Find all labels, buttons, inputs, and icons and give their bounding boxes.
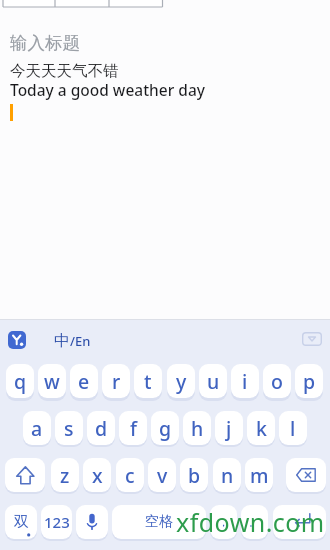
staticText: 今天天天气不错 Today a good weather day [10,61,205,101]
button[interactable]: m [245,458,273,492]
button[interactable]: i [231,364,259,398]
button[interactable] [5,458,45,492]
button[interactable]: q [6,364,34,398]
button[interactable]: u [199,364,227,398]
button[interactable]: n [213,458,241,492]
staticText: v [157,462,168,489]
staticText: 双 [14,513,29,532]
staticText: d [95,415,108,442]
staticText: t [144,368,152,395]
button[interactable]: r [102,364,130,398]
button[interactable] [286,458,326,492]
button[interactable]: t [134,364,162,398]
button[interactable]: o [263,364,291,398]
button[interactable]: 空格 [112,505,206,539]
staticText: x [92,462,103,489]
staticText: j [226,415,232,442]
button[interactable]: k [247,411,275,445]
staticText: xfdown.com [176,505,325,539]
staticText: w [44,368,60,395]
staticText: a [31,415,43,442]
button[interactable] [302,332,322,346]
button[interactable]: s [55,411,83,445]
button[interactable]: v [148,458,176,492]
staticText: 空格 [145,513,173,531]
staticText: ， [218,515,229,529]
button[interactable]: w [38,364,66,398]
staticText: z [60,462,70,489]
staticText: 输入标题 [10,32,80,54]
staticText: h [191,415,204,442]
staticText: g [159,415,172,442]
button[interactable]: b [180,458,208,492]
staticText: 中 [54,331,70,351]
staticText: b [188,462,201,489]
button[interactable]: e [70,364,98,398]
button[interactable] [273,505,326,539]
button[interactable]: a [23,411,51,445]
button[interactable]: 123 [41,505,72,539]
staticText: 123 [44,512,70,532]
button[interactable]: z [51,458,79,492]
staticText: k [256,415,267,442]
staticText: /En [70,332,91,350]
staticText: l [290,415,296,442]
staticText: n [221,462,234,489]
staticText: c [125,462,135,489]
button[interactable]: d [87,411,115,445]
button[interactable]: p [295,364,323,398]
button[interactable]: 双 [5,505,37,539]
button[interactable]: ， [210,505,237,539]
staticText: 。 [249,515,260,529]
button[interactable]: g [151,411,179,445]
button[interactable]: c [116,458,144,492]
button[interactable]: l [279,411,307,445]
staticText: i [242,368,248,395]
staticText: y [176,368,187,395]
staticText: p [303,368,316,395]
staticText: f [130,415,137,442]
staticText: u [207,368,220,395]
button[interactable]: j [215,411,243,445]
staticText: s [64,415,74,442]
button[interactable]: y [167,364,195,398]
button[interactable]: h [183,411,211,445]
staticText: e [78,368,90,395]
button[interactable]: 中 [54,330,91,352]
staticText: m [250,462,269,489]
button[interactable] [76,505,108,539]
button[interactable]: 。 [241,505,268,539]
button[interactable]: x [83,458,111,492]
staticText: o [271,368,283,395]
button[interactable] [8,331,26,349]
staticText: r [112,368,121,395]
staticText: q [14,368,27,395]
button[interactable]: f [119,411,147,445]
